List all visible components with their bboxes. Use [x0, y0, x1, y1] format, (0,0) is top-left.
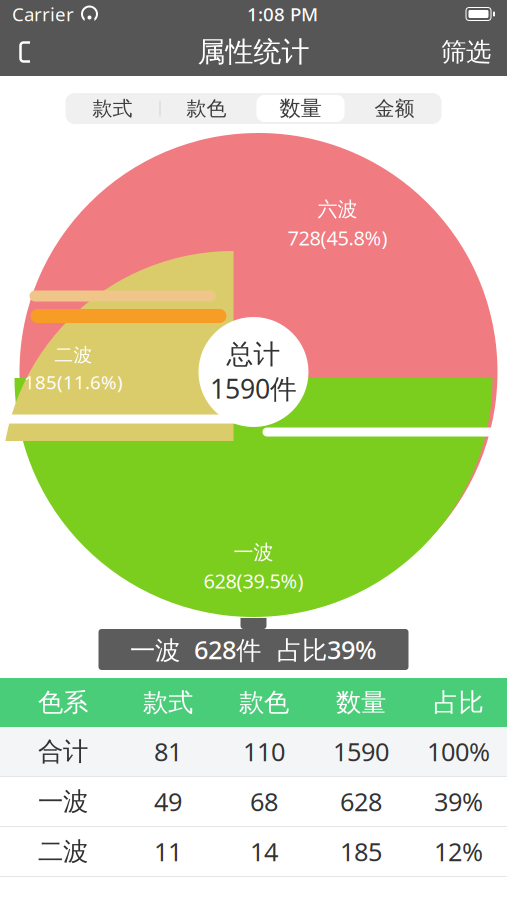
staticText: 185	[340, 835, 382, 868]
staticText: 1:08 PM	[247, 2, 318, 26]
button[interactable]: 金额	[347, 93, 441, 124]
staticText: 一波	[38, 786, 88, 817]
staticText: 728(45.8%)	[287, 224, 387, 251]
staticText: 二波	[54, 344, 92, 366]
staticText: 六波	[317, 197, 357, 221]
staticText: 68	[250, 785, 278, 818]
staticText: 1590件	[210, 371, 297, 406]
button[interactable]: 款式	[65, 93, 159, 124]
button[interactable]: 数量	[253, 93, 347, 124]
staticText: 金额	[374, 96, 414, 121]
staticText: 11	[154, 835, 182, 868]
staticText: 款式	[143, 687, 193, 718]
staticText: 数量	[336, 687, 386, 718]
button[interactable]: 二波	[0, 827, 507, 876]
staticText: 款式	[92, 96, 132, 121]
staticText: 合计	[38, 736, 88, 767]
staticText: 色系	[38, 687, 88, 718]
staticText: 628(39.5%)	[203, 567, 303, 594]
staticText: 12%	[434, 835, 483, 868]
staticText: 39%	[434, 785, 483, 818]
staticText: 二波	[38, 836, 88, 867]
button[interactable]: 合计	[0, 727, 507, 776]
staticText: 100%	[427, 735, 490, 768]
button[interactable]: Back	[0, 28, 52, 76]
button[interactable]: 筛选	[425, 28, 507, 76]
staticText: 1590	[333, 735, 389, 768]
staticText: 49	[154, 785, 182, 818]
staticText: 一波	[233, 540, 273, 564]
button[interactable]: 一波	[0, 777, 507, 826]
staticText: 款色	[186, 96, 226, 121]
staticText: 14	[250, 835, 278, 868]
staticText: 81	[154, 735, 182, 768]
staticText: 款色	[239, 687, 289, 718]
staticText: 筛选	[441, 36, 491, 67]
staticText: 总计	[226, 338, 280, 371]
staticText: 数量	[279, 95, 321, 122]
staticText: 属性统计	[197, 35, 309, 69]
staticText: 占比	[433, 687, 483, 718]
staticText: Carrier	[12, 2, 74, 26]
staticText: 110	[243, 735, 285, 768]
staticText: 628	[340, 785, 382, 818]
button[interactable]: 款色	[159, 93, 253, 124]
staticText: 185(11.6%)	[24, 370, 123, 394]
staticText: 一波 628件 占比39%	[130, 633, 377, 666]
